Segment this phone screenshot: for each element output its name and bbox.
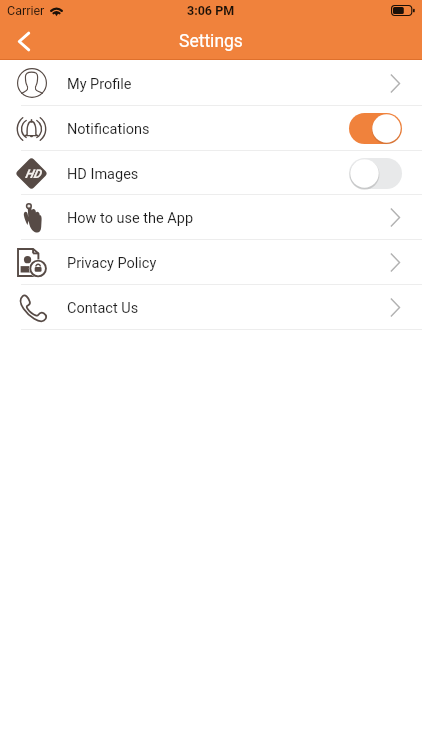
button[interactable]: Toggle off	[349, 158, 402, 189]
button[interactable]: How to use the App	[0, 195, 422, 240]
button[interactable]: HD	[0, 151, 422, 195]
button[interactable]: Contact Us	[0, 285, 422, 330]
staticText: Notifications	[67, 121, 150, 138]
button[interactable]: Toggle on	[349, 113, 402, 144]
staticText: Contact Us	[67, 300, 139, 317]
button[interactable]: Back	[0, 20, 44, 60]
staticText: HD Images	[67, 166, 139, 183]
staticText: Privacy Policy	[67, 255, 157, 272]
staticText: Settings	[179, 31, 243, 52]
staticText: 3:06 PM	[187, 3, 235, 18]
button[interactable]: My Profile	[0, 60, 422, 106]
staticText: My Profile	[67, 76, 132, 93]
staticText: How to use the App	[67, 210, 194, 227]
staticText: HD	[25, 167, 41, 181]
button[interactable]: Notifications	[0, 106, 422, 151]
staticText: Carrier	[7, 3, 45, 18]
button[interactable]: Privacy Policy	[0, 240, 422, 285]
